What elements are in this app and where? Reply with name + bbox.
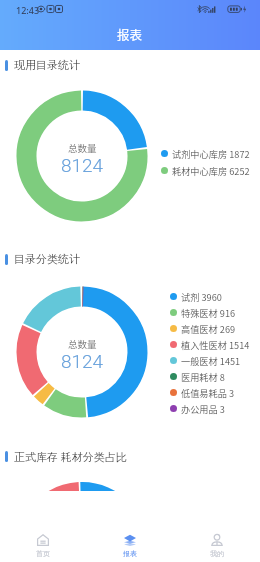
staticText: 8124: [61, 154, 104, 176]
staticText: 一般医材 1451: [181, 354, 241, 367]
staticText: 8124: [61, 350, 104, 372]
staticText: 办公用品 3: [181, 402, 225, 415]
button[interactable]: 我的: [173, 491, 260, 562]
staticText: 试剂 3960: [181, 290, 222, 303]
other: 我的: [211, 534, 223, 546]
staticText: 医用耗材 8: [181, 370, 225, 383]
staticText: 12:43: [16, 4, 40, 16]
other: 首页: [37, 534, 49, 546]
button[interactable]: 报表: [86, 491, 173, 562]
staticText: 报表: [117, 25, 143, 43]
staticText: 总数量: [68, 337, 97, 351]
staticText: 高值医材 269: [181, 322, 236, 335]
other: 报表: [124, 534, 136, 546]
staticText: 特殊医材 916: [181, 306, 236, 319]
staticText: 报表: [123, 549, 137, 558]
staticText: 现用目录统计: [14, 58, 80, 72]
staticText: 我的: [210, 549, 224, 558]
staticText: 耗材中心库房 6252: [172, 164, 250, 177]
staticText: 试剂中心库房 1872: [172, 147, 250, 160]
staticText: 目录分类统计: [14, 252, 80, 266]
staticText: 总数量: [68, 141, 97, 155]
staticText: 低值易耗品 3: [181, 386, 235, 399]
button[interactable]: 首页: [0, 491, 86, 562]
staticText: 首页: [36, 549, 50, 558]
staticText: 正式库存 耗材分类占比: [14, 449, 127, 464]
staticText: 植入性医材 1514: [181, 338, 250, 351]
